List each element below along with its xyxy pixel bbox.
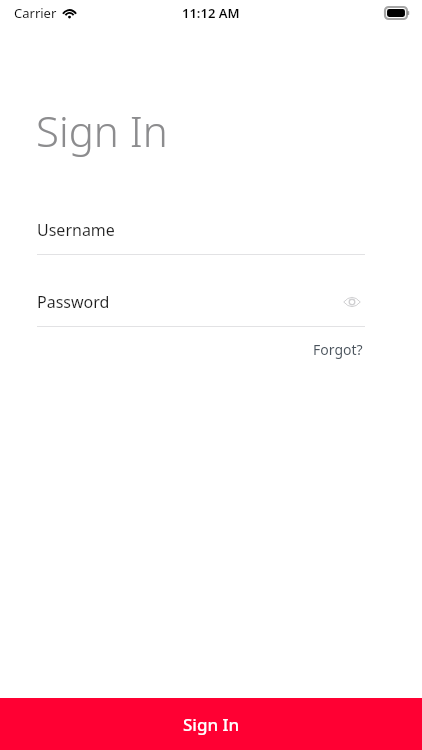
button[interactable]: Username [37,215,365,245]
button[interactable]: Show password [339,289,365,315]
staticText: Username [37,219,115,241]
button[interactable]: Forgot? [311,337,365,362]
staticText: Sign In [183,713,240,736]
button[interactable]: Password [37,287,365,317]
staticText: Forgot? [313,340,363,359]
staticText: Sign In [36,102,168,159]
staticText: Carrier [14,4,57,22]
button[interactable]: Sign In [0,698,422,750]
staticText: Password [37,291,110,313]
staticText: 11:12 AM [182,4,240,22]
